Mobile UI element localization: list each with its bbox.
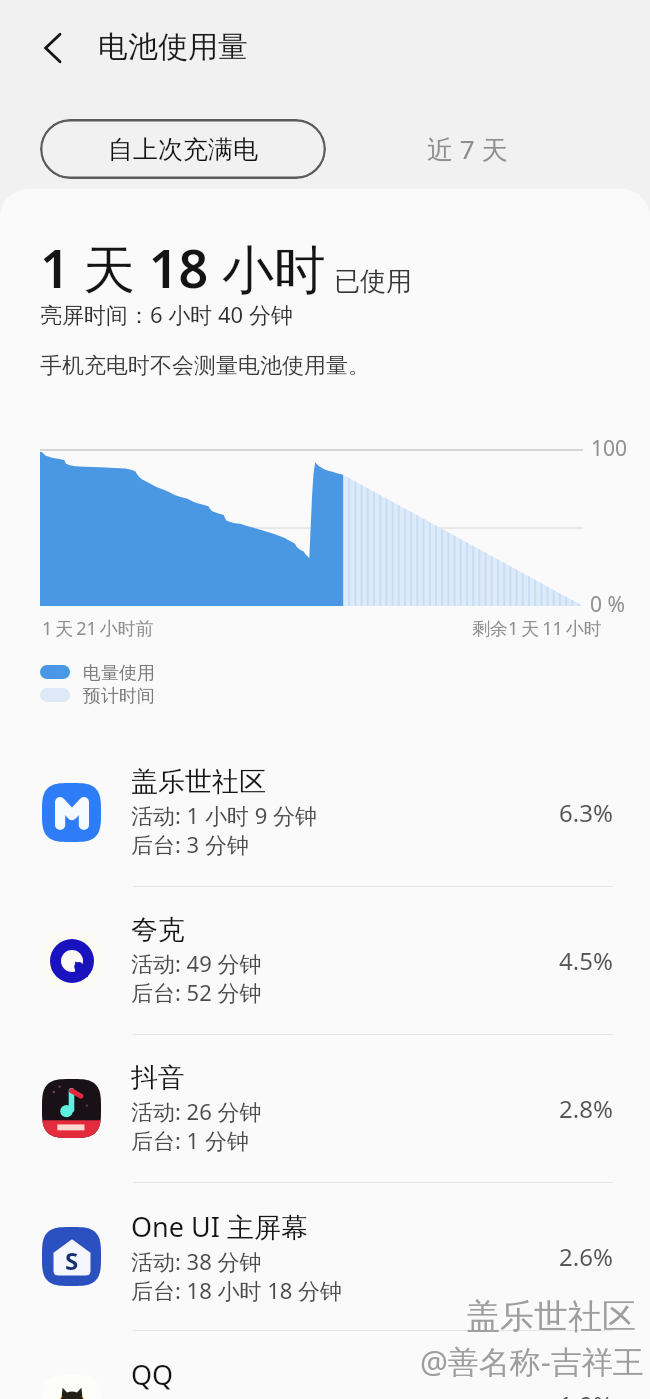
staticText: 电池使用量 [98, 28, 248, 66]
staticText: 0 % [590, 590, 625, 619]
staticText: 已使用 [334, 265, 412, 298]
button[interactable]: Back [27, 22, 79, 74]
staticText: 预计时间 [83, 685, 155, 708]
button[interactable]: 夸克 [0, 887, 650, 1034]
staticText: 4.5% [559, 944, 613, 977]
staticText: S [65, 1244, 79, 1277]
staticText: 盖乐世社区 [466, 1295, 636, 1338]
staticText: 近 7 天 [427, 131, 508, 167]
staticText: QQ [131, 1356, 174, 1393]
staticText: One UI 主屏幕 [131, 1208, 308, 1245]
staticText: 1 天 18 小时 [40, 232, 326, 303]
staticText: 夸克 [131, 913, 185, 947]
staticText: 2.8% [559, 1092, 613, 1125]
staticText: 电量使用 [83, 662, 155, 685]
staticText: 剩余1 天 11 小时 [472, 616, 602, 641]
staticText: @善名称-吉祥王 [420, 1340, 644, 1382]
staticText: 6.3% [559, 796, 613, 829]
staticText: 活动: 49 分钟 后台: 52 分钟 [131, 948, 262, 1008]
button[interactable]: 抖音 [0, 1035, 650, 1182]
staticText: 自上次充满电 [108, 134, 258, 165]
staticText: 1 天 21 小时前 [42, 616, 154, 641]
button[interactable]: 近 7 天 [400, 119, 535, 179]
button[interactable]: QQ [0, 1331, 650, 1399]
staticText: 活动: 1 小时 9 分钟 后台: 3 分钟 [131, 800, 317, 860]
staticText: 活动: 38 分钟 后台: 18 小时 18 分钟 [131, 1246, 343, 1306]
button[interactable]: 自上次充满电 [40, 119, 326, 179]
staticText: 2.6% [559, 1240, 613, 1273]
staticText: 盖乐世社区 [131, 765, 266, 799]
staticText: 抖音 [131, 1061, 185, 1095]
staticText: 手机充电时不会测量电池使用量。 [40, 352, 370, 380]
staticText: 亮屏时间：6 小时 40 分钟 [40, 299, 293, 329]
staticText: 1.9% [559, 1388, 613, 1399]
staticText: 100 [591, 434, 628, 463]
staticText: 活动: 26 分钟 后台: 1 分钟 [131, 1096, 262, 1156]
button[interactable]: 盖乐世社区 [0, 739, 650, 886]
button[interactable]: S [0, 1183, 650, 1330]
